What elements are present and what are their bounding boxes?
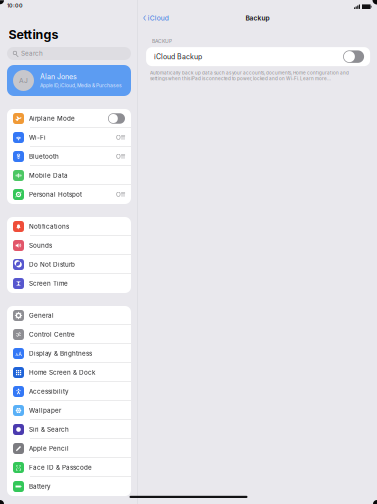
button[interactable]: Notifications — [7, 217, 131, 236]
staticText: Backup — [246, 14, 270, 22]
staticText: Apple ID, iCloud, Media & Purchases — [40, 82, 122, 88]
staticText: Personal Hotspot — [29, 191, 82, 198]
staticText: Battery — [29, 483, 51, 490]
staticText: Automatically back up data such as your … — [150, 70, 349, 81]
staticText: 10:00 — [7, 2, 23, 9]
staticText: Bluetooth — [29, 153, 59, 160]
staticText: Off — [116, 134, 125, 141]
staticText: Notifications — [29, 223, 69, 230]
button[interactable]: AJ — [7, 65, 131, 96]
button[interactable]: Mobile Data — [7, 166, 131, 185]
staticText: Siri & Search — [29, 426, 69, 433]
button[interactable]: Accessibility — [7, 382, 131, 401]
button[interactable]: iCloud Backup — [146, 47, 370, 66]
staticText: Face ID & Passcode — [29, 464, 92, 471]
button[interactable]: Screen Time — [7, 274, 131, 293]
staticText: Off — [116, 153, 125, 160]
staticText: iCloud — [148, 14, 169, 22]
staticText: Search — [21, 50, 43, 57]
button[interactable]: Display & Brightness — [7, 344, 131, 363]
staticText: General — [29, 312, 54, 319]
button[interactable]: Home Screen & Dock — [7, 363, 131, 382]
button[interactable]: Bluetooth — [7, 147, 131, 166]
button[interactable]: Siri & Search — [7, 420, 131, 439]
staticText: Do Not Disturb — [29, 261, 75, 268]
button[interactable]: Do Not Disturb — [7, 255, 131, 274]
staticText: iCloud Backup — [154, 52, 202, 61]
staticText: Home Screen & Dock — [29, 369, 95, 376]
button[interactable]: Face ID & Passcode — [7, 458, 131, 477]
button[interactable]: iCloud — [138, 11, 173, 25]
button[interactable]: Sounds — [7, 236, 131, 255]
button[interactable]: Personal Hotspot — [7, 185, 131, 204]
button[interactable]: Airplane Mode — [7, 109, 131, 128]
staticText: Control Centre — [29, 331, 75, 338]
staticText: Wi-Fi — [29, 134, 46, 141]
staticText: Mobile Data — [29, 172, 68, 179]
staticText: Settings — [8, 27, 58, 42]
staticText: Screen Time — [29, 280, 68, 287]
staticText: BACKUP — [152, 38, 172, 44]
staticText: Airplane Mode — [29, 115, 75, 122]
staticText: AJ — [19, 76, 28, 85]
staticText: Apple Pencil — [29, 445, 69, 452]
button[interactable]: General — [7, 306, 131, 325]
button[interactable]: Wi-Fi — [7, 128, 131, 147]
staticText: Accessibility — [29, 388, 69, 395]
staticText: Display & Brightness — [29, 350, 92, 357]
staticText: Wallpaper — [29, 407, 61, 414]
button[interactable]: Apple Pencil — [7, 439, 131, 458]
staticText: Off — [116, 191, 125, 198]
staticText: Alan Jones — [40, 72, 77, 81]
button[interactable]: Wallpaper — [7, 401, 131, 420]
button[interactable]: Search — [7, 47, 131, 60]
button[interactable]: Battery — [7, 477, 131, 496]
staticText: Sounds — [29, 242, 52, 249]
button[interactable]: Control Centre — [7, 325, 131, 344]
